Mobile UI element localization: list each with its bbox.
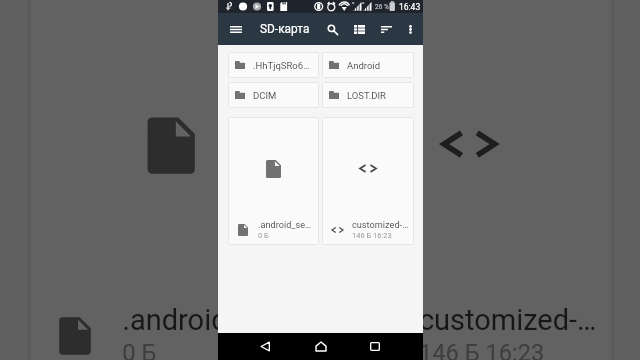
staticText: customized-…	[419, 302, 599, 336]
button[interactable]: More options	[399, 13, 421, 45]
staticText: 0 Б	[122, 339, 157, 360]
button[interactable]: .HhTjqSRo6…	[228, 52, 319, 78]
button[interactable]: Search	[319, 13, 345, 45]
staticText: 146 Б 16:23	[419, 339, 545, 360]
button[interactable]: .android_se…	[28, 0, 315, 360]
staticText: customized-…	[352, 219, 409, 230]
button[interactable]: DCIM	[228, 82, 319, 108]
staticText: DCIM	[253, 90, 277, 101]
staticText: .android_se…	[258, 219, 312, 230]
staticText: 26 %	[375, 3, 389, 11]
button[interactable]: Home	[299, 333, 343, 360]
button[interactable]: Back	[243, 333, 287, 360]
button[interactable]: Android	[322, 52, 414, 78]
staticText: Android	[347, 60, 381, 71]
staticText: 146 Б 16:23	[352, 231, 392, 240]
staticText: SD-карта	[260, 22, 310, 36]
button[interactable]: Change view	[346, 13, 372, 45]
button[interactable]: Navigation menu	[223, 13, 249, 45]
button[interactable]: Sort	[373, 13, 399, 45]
staticText: LOST.DIR	[347, 90, 386, 101]
button[interactable]: customized-…	[324, 0, 614, 360]
staticText: .HhTjqSRo6…	[253, 60, 310, 71]
button[interactable]: customized-…	[322, 117, 414, 245]
staticText: .android_se…	[122, 302, 293, 336]
button[interactable]: LOST.DIR	[322, 82, 414, 108]
staticText: 0 Б	[258, 231, 269, 240]
staticText: 16:43	[399, 2, 421, 12]
button[interactable]: Recent apps	[353, 333, 397, 360]
button[interactable]: .android_se…	[228, 117, 319, 245]
